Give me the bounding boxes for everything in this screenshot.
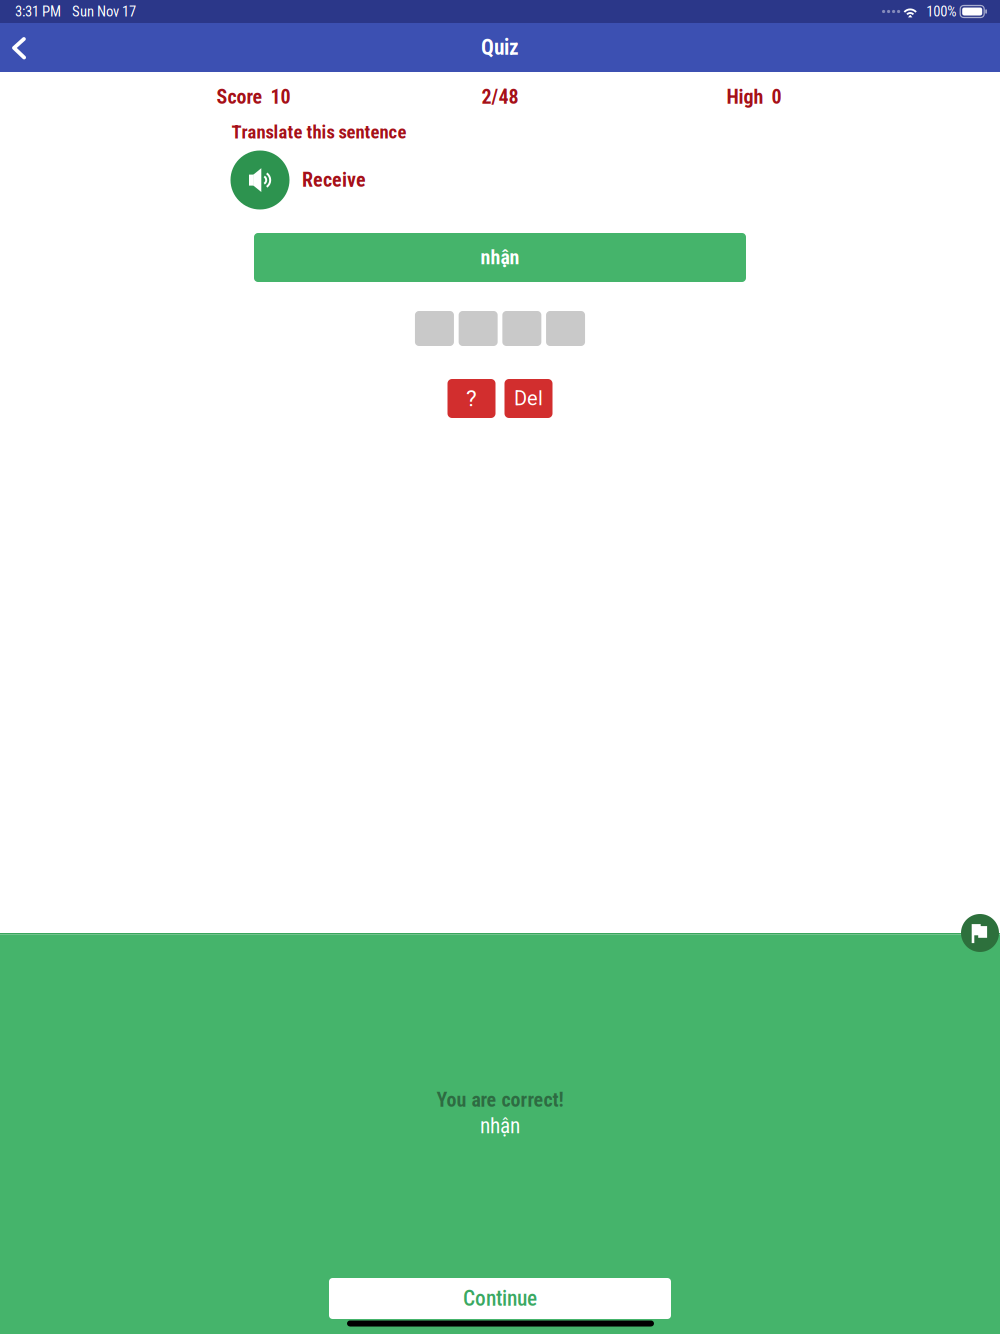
- staticText: 0: [771, 85, 781, 109]
- staticText: 2/48: [481, 85, 518, 109]
- staticText: Del: [514, 387, 543, 410]
- staticText: Receive: [302, 168, 366, 192]
- staticText: Continue: [463, 1286, 537, 1311]
- staticText: 10: [270, 85, 290, 109]
- button[interactable]: ?: [447, 379, 495, 418]
- button[interactable]: Report a problem: [961, 914, 999, 952]
- button[interactable]: Empty letter slot: [502, 311, 541, 346]
- button[interactable]: Empty letter slot: [415, 311, 454, 346]
- staticText: High: [726, 85, 763, 109]
- staticText: 3:31 PM: [15, 3, 61, 20]
- button[interactable]: nhận: [254, 233, 746, 282]
- button[interactable]: Empty letter slot: [459, 311, 498, 346]
- staticText: Quiz: [481, 35, 519, 60]
- staticText: Score: [216, 85, 262, 109]
- button[interactable]: Back: [0, 23, 38, 72]
- button[interactable]: Del: [504, 379, 552, 418]
- staticText: Sun Nov 17: [72, 3, 136, 20]
- staticText: ?: [466, 385, 477, 412]
- staticText: 100%: [926, 3, 956, 20]
- staticText: You are correct!: [436, 1088, 563, 1112]
- staticText: Translate this sentence: [231, 121, 406, 143]
- staticText: nhận: [480, 246, 519, 269]
- button[interactable]: Empty letter slot: [546, 311, 585, 346]
- button[interactable]: Continue: [329, 1278, 671, 1319]
- staticText: nhận: [480, 1113, 520, 1138]
- button[interactable]: Play pronunciation: [230, 150, 289, 209]
